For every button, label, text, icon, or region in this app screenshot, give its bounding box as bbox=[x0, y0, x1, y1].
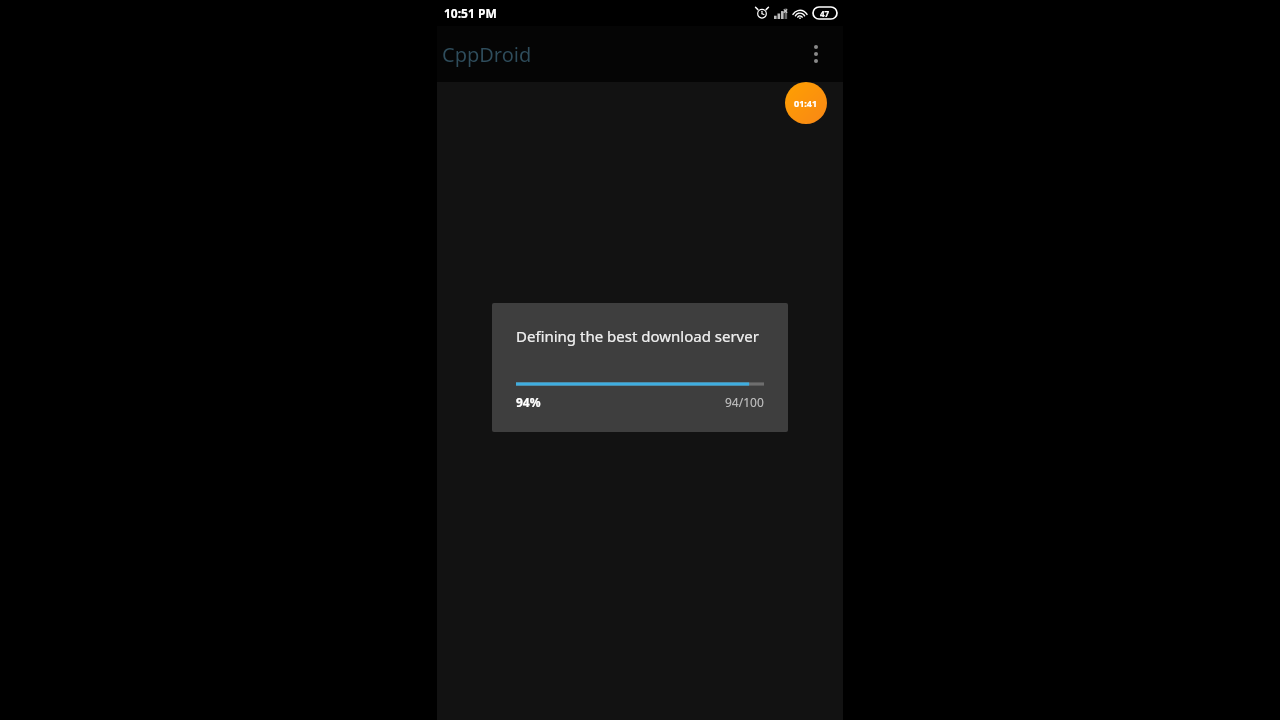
staticText: 47 bbox=[820, 8, 830, 19]
staticText: 94% bbox=[516, 394, 541, 410]
button[interactable]: Timer 01:41 bbox=[785, 82, 827, 124]
staticText: CppDroid bbox=[442, 41, 532, 68]
button[interactable]: More options bbox=[794, 32, 838, 76]
staticText: 94/100 bbox=[725, 394, 764, 410]
staticText: 10:51 PM bbox=[444, 5, 497, 21]
staticText: Defining the best download server bbox=[516, 326, 759, 346]
staticText: 01:41 bbox=[794, 97, 818, 109]
button[interactable]: Defining the best download server bbox=[492, 303, 788, 432]
